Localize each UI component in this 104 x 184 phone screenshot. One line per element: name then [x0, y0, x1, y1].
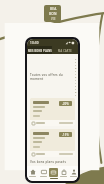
staticText: 10:30 [30, 41, 39, 45]
button[interactable]: Toutes vos offres du moment [30, 57, 75, 96]
staticText: MA CARTE [58, 49, 72, 52]
button[interactable]: Accueil [27, 166, 38, 181]
staticText: -20% [62, 102, 69, 106]
button[interactable]: MA CARTE [52, 46, 78, 54]
staticText: Vos bons plans passés [30, 160, 67, 164]
staticText: Toutes vos offres du moment [30, 73, 75, 81]
button[interactable]: Ma carte [48, 166, 58, 181]
button[interactable]: MES BONS PLANS [27, 46, 52, 54]
staticText: BON [49, 12, 57, 16]
staticText: VIE [51, 17, 56, 21]
button[interactable]: Vos bons plans passés [30, 160, 75, 164]
button[interactable]: Compte [68, 166, 78, 181]
button[interactable]: -15% [59, 132, 72, 137]
staticText: BEA [50, 7, 57, 11]
staticText: MES BONS PLANS [28, 49, 52, 52]
button[interactable]: -15% [30, 129, 75, 157]
button[interactable]: -20% [30, 98, 75, 126]
button[interactable]: Magasins [58, 166, 68, 181]
staticText: -15% [62, 133, 69, 137]
button[interactable]: Bons plans [38, 166, 48, 181]
button[interactable]: -20% [59, 101, 72, 106]
button[interactable]: App logo [44, 5, 61, 22]
